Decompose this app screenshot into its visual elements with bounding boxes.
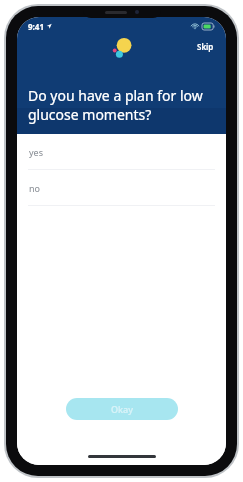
button[interactable]: no [17, 170, 226, 205]
staticText: Okay [111, 403, 133, 415]
staticText: yes [29, 146, 43, 158]
staticText: Skip [197, 41, 214, 52]
staticText: no [29, 182, 41, 194]
staticText: Do you have a plan for low glucose momen… [28, 86, 215, 124]
button[interactable]: Skip [193, 39, 218, 54]
button[interactable]: yes [17, 134, 226, 169]
staticText: 9:41 [28, 21, 44, 32]
button[interactable]: Okay [66, 398, 178, 420]
